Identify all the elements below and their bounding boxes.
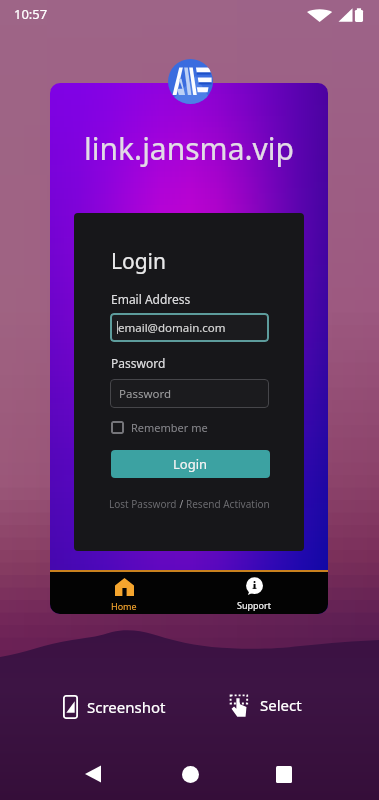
button[interactable]: Screenshot	[57, 689, 166, 725]
button[interactable]: Home	[166, 750, 214, 798]
staticText: Password	[111, 355, 166, 371]
button[interactable]: Resend Activation	[186, 497, 270, 511]
staticText: Login	[173, 455, 208, 473]
staticText: Login	[111, 247, 167, 276]
staticText: Screenshot	[87, 697, 166, 717]
staticText: 10:57	[14, 5, 48, 23]
staticText: link.jansma.vip	[50, 128, 328, 169]
staticText: Email Address	[111, 291, 191, 307]
button[interactable]: Password	[110, 379, 269, 408]
button[interactable]: Recent apps	[260, 750, 308, 798]
staticText: Password	[119, 386, 172, 402]
button[interactable]: Back	[69, 750, 117, 798]
other: Logo	[168, 59, 213, 104]
button[interactable]: Remember me	[111, 420, 208, 435]
button[interactable]: Select	[223, 687, 302, 723]
button[interactable]: Home	[92, 570, 156, 614]
button[interactable]: Support	[222, 570, 286, 614]
staticText: Select	[260, 695, 302, 715]
button[interactable]: Lost Password	[109, 497, 177, 511]
staticText: Remember me	[131, 420, 208, 435]
staticText: Support	[237, 599, 271, 611]
staticText: /	[177, 497, 186, 511]
button[interactable]: email@domain.com	[110, 313, 269, 342]
button[interactable]: Login	[111, 450, 270, 478]
staticText: Home	[111, 600, 137, 612]
staticText: email@domain.com	[118, 320, 226, 336]
